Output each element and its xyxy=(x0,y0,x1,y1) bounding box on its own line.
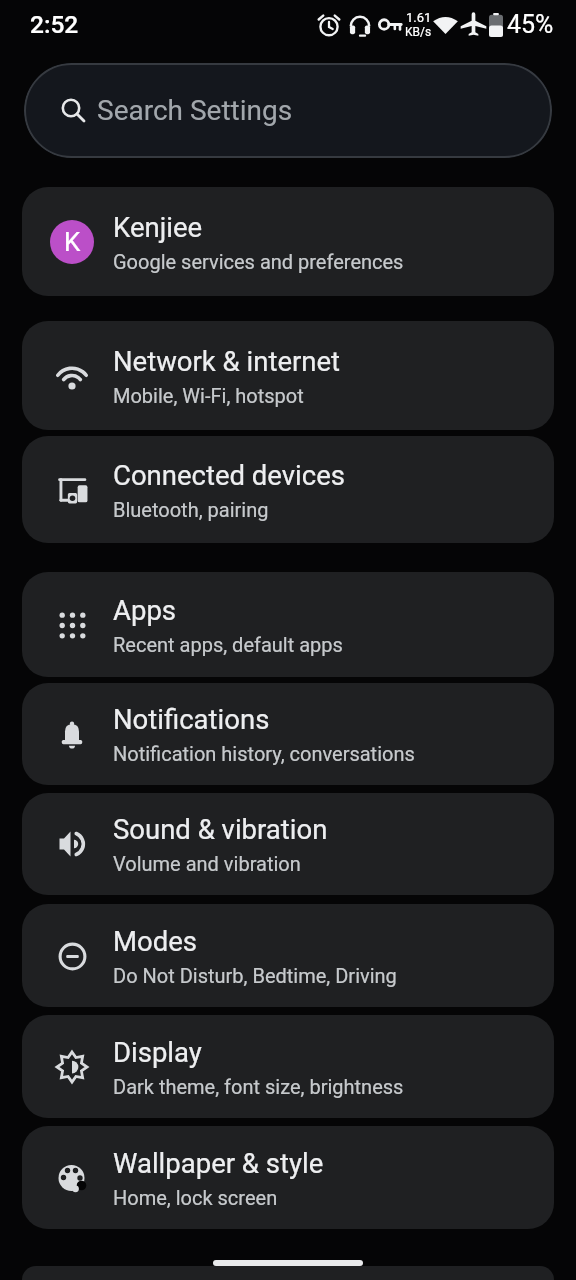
staticText: Volume and vibration xyxy=(113,852,301,875)
button[interactable]: Modes xyxy=(22,904,554,1007)
staticText: Bluetooth, pairing xyxy=(113,498,269,521)
button[interactable]: Wallpaper & style xyxy=(22,1126,554,1229)
staticText: Home, lock screen xyxy=(113,1186,278,1209)
staticText: Dark theme, font size, brightness xyxy=(113,1075,404,1098)
button[interactable]: Sound & vibration xyxy=(22,793,554,895)
button[interactable]: Apps xyxy=(22,572,554,677)
staticText: 2:52 xyxy=(30,10,79,39)
staticText: 1.61 xyxy=(406,10,432,25)
staticText: Notifications xyxy=(113,703,270,735)
button[interactable]: Notifications xyxy=(22,683,554,785)
staticText: Kenjiee xyxy=(113,211,203,243)
staticText: 45% xyxy=(507,10,554,39)
staticText: Mobile, Wi-Fi, hotspot xyxy=(113,384,304,407)
staticText: Apps xyxy=(113,594,177,626)
staticText: Network & internet xyxy=(113,345,341,377)
staticText: Notification history, conversations xyxy=(113,742,415,765)
staticText: Do Not Disturb, Bedtime, Driving xyxy=(113,964,397,987)
staticText: K xyxy=(64,227,81,257)
staticText: Search Settings xyxy=(97,94,293,127)
staticText: Wallpaper & style xyxy=(113,1147,324,1179)
staticText: Sound & vibration xyxy=(113,813,328,845)
button[interactable]: Network & internet xyxy=(22,321,554,430)
staticText: KB/s xyxy=(405,25,432,39)
button[interactable]: Connected devices xyxy=(22,436,554,543)
button[interactable]: Display xyxy=(22,1015,554,1118)
button[interactable]: K xyxy=(22,187,554,296)
staticText: Display xyxy=(113,1036,202,1068)
staticText: Modes xyxy=(113,925,197,957)
staticText: Google services and preferences xyxy=(113,250,404,273)
staticText: Recent apps, default apps xyxy=(113,633,343,656)
button[interactable]: Search Settings xyxy=(24,63,552,158)
staticText: Connected devices xyxy=(113,459,345,491)
